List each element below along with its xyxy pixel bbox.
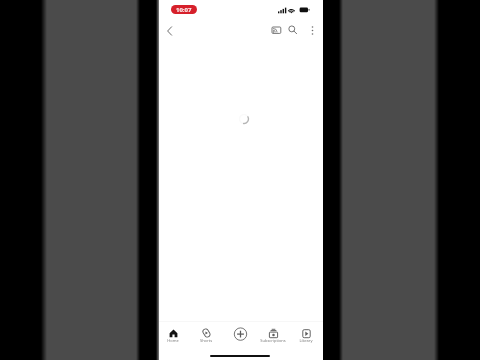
button[interactable]: Create — [224, 324, 256, 346]
button[interactable]: More options — [303, 21, 321, 39]
button[interactable]: Home — [157, 324, 189, 346]
button[interactable]: Shorts — [190, 324, 222, 346]
button[interactable]: Search — [283, 21, 302, 40]
button[interactable]: Library — [290, 324, 322, 346]
staticText: Home — [157, 338, 189, 343]
staticText: Subscriptions — [257, 338, 289, 343]
staticText: 10:07 — [176, 6, 192, 14]
staticText: Library — [290, 338, 322, 343]
button[interactable]: Subscriptions — [257, 324, 289, 346]
button[interactable]: Back — [160, 21, 179, 40]
staticText: Shorts — [190, 338, 222, 343]
button[interactable]: Cast — [267, 21, 286, 40]
